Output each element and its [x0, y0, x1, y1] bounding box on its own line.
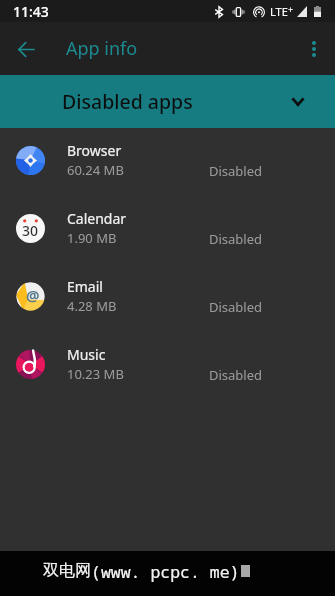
staticText: LTE	[270, 4, 288, 19]
staticText: Browser	[67, 141, 122, 160]
staticText: +	[288, 3, 294, 15]
staticText: 30	[22, 221, 39, 240]
button[interactable]: Music	[0, 332, 335, 400]
button[interactable]: 30	[0, 196, 335, 264]
button[interactable]: Browser	[0, 128, 335, 196]
staticText: Disabled	[209, 298, 263, 316]
staticText: 双电网	[43, 561, 91, 581]
staticText: (www. pcpc. me)	[91, 560, 240, 582]
button[interactable]: More options	[296, 31, 332, 67]
staticText: 1.90 MB	[67, 229, 117, 247]
staticText: Calendar	[67, 209, 127, 228]
staticText: 4.28 MB	[67, 297, 117, 315]
staticText: Disabled	[209, 230, 263, 248]
staticText: 60.24 MB	[67, 161, 124, 179]
staticText: @	[26, 285, 40, 305]
staticText: Disabled	[209, 162, 263, 180]
staticText: Disabled	[209, 366, 263, 384]
staticText: 10.23 MB	[67, 365, 124, 383]
staticText: Disabled apps	[62, 88, 193, 115]
staticText: 11:43	[13, 2, 49, 21]
button[interactable]: @	[0, 264, 335, 332]
staticText: Email	[67, 277, 103, 296]
button[interactable]: Disabled apps	[0, 75, 335, 128]
staticText: Music	[67, 345, 106, 364]
button[interactable]: Back	[8, 31, 44, 67]
staticText: App info	[66, 36, 138, 61]
